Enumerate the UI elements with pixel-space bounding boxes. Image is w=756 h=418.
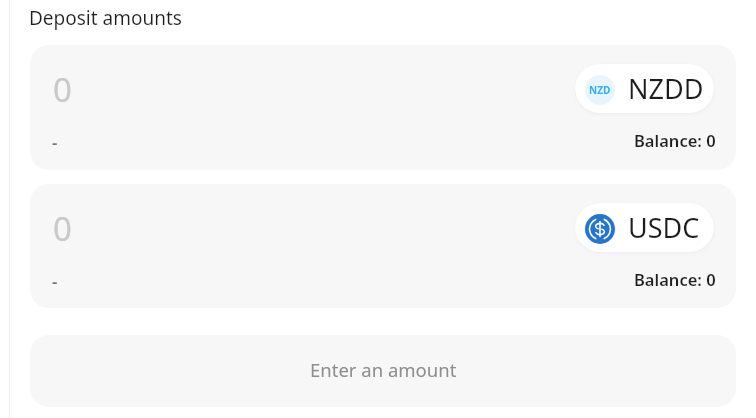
button[interactable]: NZD: [575, 64, 714, 113]
staticText: Balance: 0: [634, 268, 716, 290]
button[interactable]: Enter an amount: [30, 335, 736, 407]
staticText: NZD: [589, 83, 611, 97]
button[interactable]: Enter NZDD amount: [30, 45, 736, 170]
staticText: -: [52, 270, 58, 292]
staticText: 0: [53, 67, 72, 112]
staticText: Enter an amount: [310, 357, 457, 382]
staticText: 0: [53, 206, 72, 251]
staticText: Deposit amounts: [29, 5, 182, 31]
other: USDC token: [585, 214, 615, 244]
button[interactable]: Enter USDC amount: [30, 184, 736, 308]
staticText: NZDD: [628, 70, 704, 107]
button[interactable]: USDC token: [575, 203, 714, 252]
staticText: USDC: [628, 209, 700, 246]
staticText: -: [52, 131, 58, 153]
staticText: Balance: 0: [634, 129, 716, 151]
